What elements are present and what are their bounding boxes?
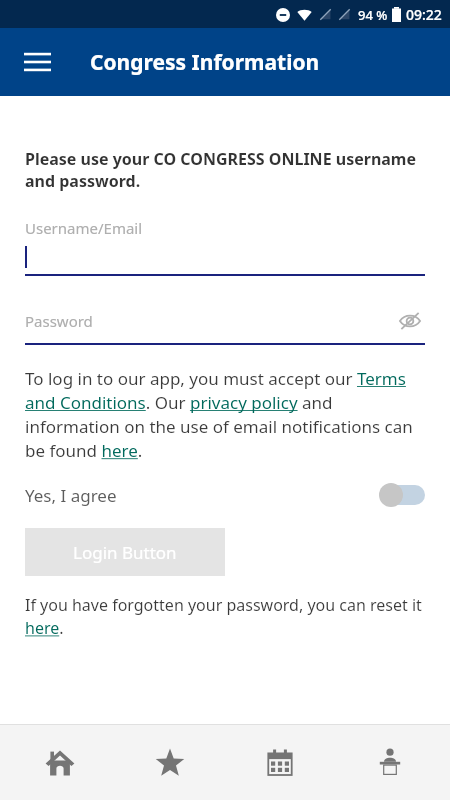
staticText: Congress Information <box>90 48 320 77</box>
button[interactable]: Home <box>10 725 110 800</box>
staticText: Password <box>25 311 93 331</box>
button[interactable]: Program <box>230 725 330 800</box>
button[interactable]: Show password <box>395 306 425 336</box>
button[interactable]: Password <box>25 306 425 345</box>
staticText: Please use your CO CONGRESS ONLINE usern… <box>25 148 425 192</box>
button[interactable]: Agree toggle <box>379 482 425 508</box>
button[interactable]: Login Button <box>25 528 225 576</box>
button[interactable]: Speakers <box>340 725 440 800</box>
staticText: 09:22 <box>406 5 442 24</box>
staticText: Login Button <box>73 541 177 564</box>
button[interactable]: Username/Email <box>25 218 425 276</box>
staticText: Yes, I agree <box>25 484 117 507</box>
staticText: Username/Email <box>25 218 143 238</box>
button[interactable]: Open navigation menu <box>12 37 62 87</box>
button[interactable]: Favorites <box>120 725 220 800</box>
button[interactable]: If you have forgotten your password, you… <box>25 594 425 639</box>
button[interactable]: To log in to our app, you must accept ou… <box>25 367 425 462</box>
staticText: 94 % <box>358 6 388 24</box>
button[interactable]: Yes, I agree <box>25 474 425 516</box>
